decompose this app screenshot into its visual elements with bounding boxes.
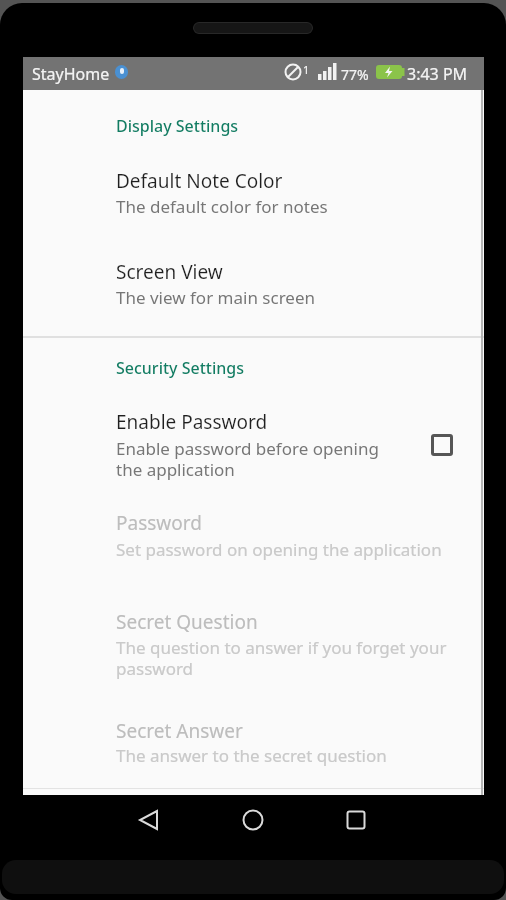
button[interactable] <box>200 803 310 843</box>
staticText: Secret Question <box>116 609 258 635</box>
staticText: Security Settings <box>116 357 244 379</box>
staticText: Enable Password <box>116 409 268 435</box>
staticText: 1 <box>303 62 310 77</box>
staticText: The question to answer if you forget you… <box>116 636 447 680</box>
staticText: The default color for notes <box>116 195 328 218</box>
staticText: Secret Answer <box>116 718 243 744</box>
button[interactable] <box>310 803 420 843</box>
staticText: StayHome <box>32 63 110 85</box>
button[interactable] <box>23 245 484 317</box>
staticText: Default Note Color <box>116 168 283 194</box>
staticText: The view for main screen <box>116 286 316 309</box>
button[interactable] <box>90 803 200 843</box>
staticText: The answer to the secret question <box>116 744 387 767</box>
staticText: Display Settings <box>116 115 239 137</box>
staticText: Password <box>116 510 202 536</box>
staticText: Screen View <box>116 259 223 285</box>
button[interactable] <box>23 395 484 491</box>
button[interactable] <box>431 434 453 456</box>
staticText: 77% <box>341 65 369 84</box>
button[interactable] <box>23 104 484 150</box>
button[interactable] <box>23 154 484 226</box>
staticText: Enable password before opening the appli… <box>116 437 379 481</box>
staticText: Set password on opening the application <box>116 538 442 561</box>
staticText: 3:43 PM <box>407 63 468 85</box>
